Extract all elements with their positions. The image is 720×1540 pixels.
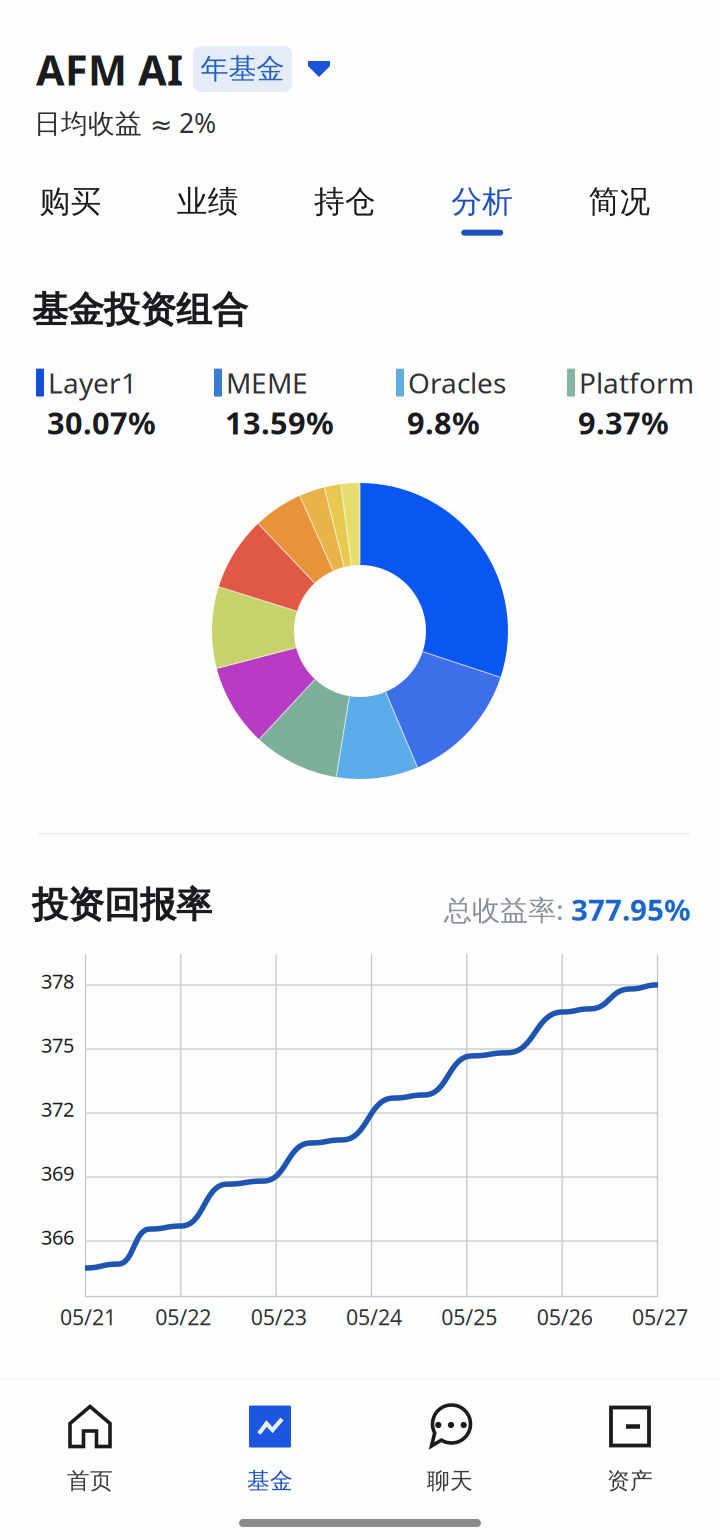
staticText: 业绩 [177, 183, 239, 221]
button[interactable]: 资产 [540, 1404, 720, 1495]
staticText: 9.37% [578, 402, 669, 443]
staticText: 基金 [247, 1467, 293, 1495]
staticText: MEME [226, 364, 308, 401]
staticText: 分析 [451, 183, 513, 221]
staticText: 购买 [40, 183, 102, 221]
staticText: 13.59% [225, 402, 334, 443]
staticText: 聊天 [427, 1467, 473, 1495]
staticText: 日均收益 ≈ 2% [34, 105, 216, 140]
staticText: 372 [41, 1096, 74, 1122]
staticText: 投资回报率 [32, 883, 212, 927]
staticText: 05/23 [251, 1303, 307, 1331]
button[interactable]: 年基金 [193, 46, 292, 92]
staticText: 简况 [588, 183, 650, 221]
staticText: 总收益率: [444, 891, 564, 928]
staticText: 05/25 [441, 1303, 497, 1331]
staticText: 基金投资组合 [32, 288, 248, 332]
staticText: 378 [41, 968, 74, 994]
staticText: 资产 [607, 1467, 653, 1495]
button[interactable]: 分析 [414, 179, 551, 240]
staticText: 366 [41, 1224, 74, 1250]
button[interactable]: 简况 [551, 179, 688, 240]
button[interactable]: Change fund [297, 50, 341, 88]
staticText: 持仓 [314, 183, 376, 221]
staticText: 05/21 [60, 1303, 116, 1331]
staticText: 年基金 [200, 52, 284, 86]
staticText: 05/27 [632, 1303, 688, 1331]
button[interactable]: 聊天 [360, 1404, 540, 1495]
staticText: Platform [579, 364, 694, 401]
staticText: 369 [41, 1160, 74, 1186]
staticText: AFM AI [36, 42, 183, 97]
staticText: 05/22 [155, 1303, 211, 1331]
staticText: Oracles [408, 364, 506, 401]
staticText: 377.95% [571, 890, 690, 929]
staticText: 首页 [67, 1467, 113, 1495]
staticText: 9.8% [407, 402, 480, 443]
button[interactable]: 首页 [0, 1404, 180, 1495]
button[interactable]: 购买 [2, 179, 139, 240]
staticText: 375 [41, 1032, 74, 1058]
button[interactable]: 基金 [180, 1404, 360, 1495]
staticText: 05/24 [346, 1303, 402, 1331]
button[interactable]: 业绩 [139, 179, 276, 240]
staticText: Layer1 [48, 364, 137, 401]
staticText: 30.07% [47, 402, 156, 443]
button[interactable]: 持仓 [276, 179, 414, 240]
staticText: 05/26 [537, 1303, 593, 1331]
